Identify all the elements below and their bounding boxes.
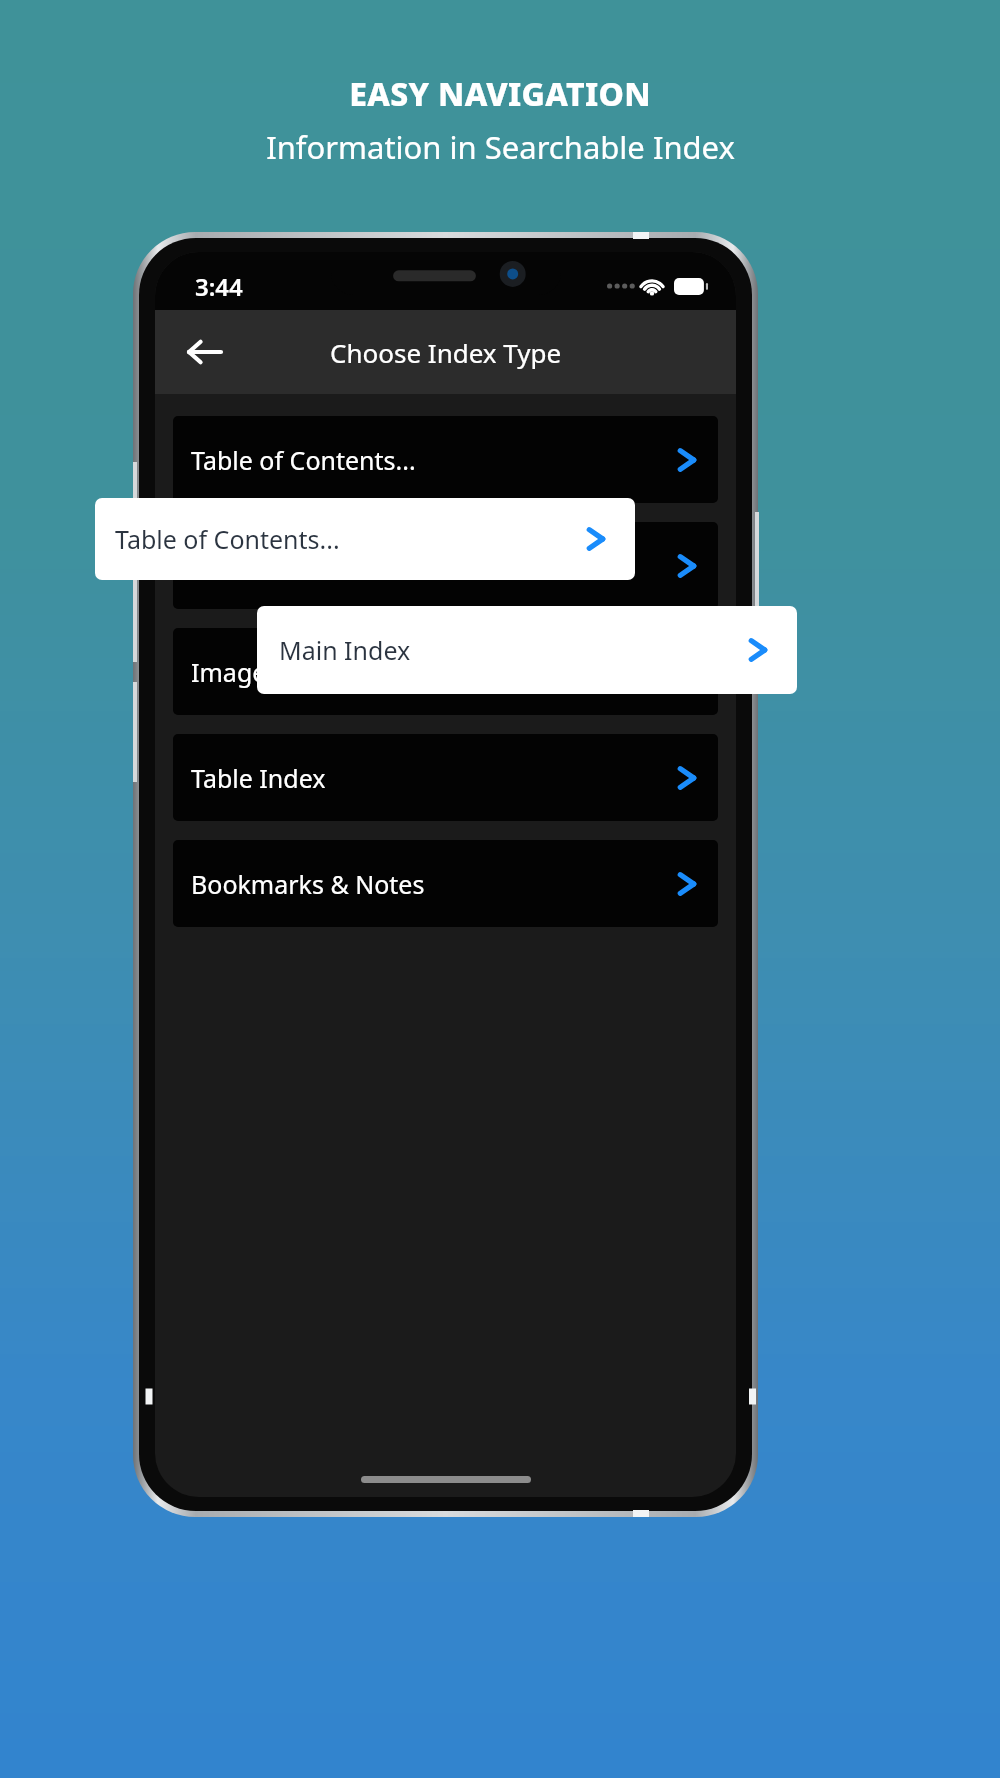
staticText: Table of Contents...	[115, 522, 340, 556]
staticText: Table Index	[191, 761, 326, 795]
button[interactable]: Bookmarks & Notes	[173, 840, 718, 927]
staticText: Main Index	[279, 633, 411, 667]
staticText: 3:44	[195, 270, 243, 303]
button[interactable]: Table of Contents...	[95, 498, 635, 580]
staticText: Table of Contents...	[191, 443, 416, 477]
staticText: Choose Index Type	[330, 335, 562, 370]
button[interactable]: Image Index	[173, 628, 718, 715]
staticText: Main Index	[191, 549, 323, 583]
button[interactable]: Table of Contents...	[173, 416, 718, 503]
button[interactable]: Main Index	[257, 606, 797, 694]
staticText: Information in Searchable Index	[266, 126, 735, 168]
button[interactable]: Main Index	[173, 522, 718, 609]
staticText: EASY NAVIGATION	[349, 72, 651, 116]
staticText: Image Index	[191, 655, 339, 689]
button[interactable]: Table Index	[173, 734, 718, 821]
button[interactable]: Back	[173, 321, 235, 383]
staticText: Bookmarks & Notes	[191, 867, 425, 901]
